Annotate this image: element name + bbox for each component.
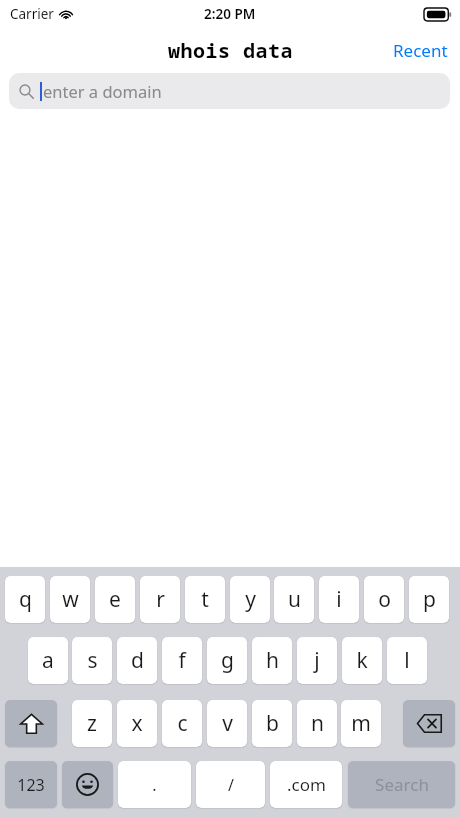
button[interactable]: . <box>118 761 191 808</box>
staticText: a <box>42 646 54 675</box>
button[interactable]: e <box>95 576 135 623</box>
button[interactable]: f <box>162 637 202 684</box>
button[interactable]: y <box>230 576 270 623</box>
staticText: r <box>156 585 165 614</box>
staticText: p <box>423 585 436 614</box>
staticText: d <box>131 646 144 675</box>
button[interactable]: q <box>5 576 45 623</box>
button[interactable]: b <box>252 700 292 747</box>
button[interactable]: l <box>387 637 427 684</box>
button[interactable]: m <box>341 700 381 747</box>
staticText: 2:20 PM <box>204 5 256 23</box>
staticText: e <box>109 585 121 614</box>
staticText: x <box>131 709 143 738</box>
staticText: o <box>378 585 391 614</box>
button[interactable]: t <box>185 576 225 623</box>
staticText: s <box>87 646 98 675</box>
staticText: f <box>178 646 186 675</box>
button[interactable]: v <box>207 700 247 747</box>
button[interactable]: i <box>319 576 359 623</box>
staticText: u <box>288 585 301 614</box>
staticText: .com <box>287 773 326 796</box>
button[interactable]: x <box>117 700 157 747</box>
staticText: w <box>62 585 79 614</box>
button[interactable]: z <box>72 700 112 747</box>
button[interactable]: Recent <box>381 33 460 68</box>
staticText: c <box>177 709 188 738</box>
button[interactable]: Emoji <box>62 761 113 808</box>
staticText: g <box>221 646 234 675</box>
button[interactable]: .com <box>270 761 342 808</box>
button[interactable]: Shift <box>5 700 57 747</box>
button[interactable]: 123 <box>5 761 57 808</box>
button[interactable]: enter a domain <box>9 73 450 109</box>
staticText: t <box>201 585 209 614</box>
staticText: n <box>311 709 324 738</box>
button[interactable]: Search <box>348 761 455 808</box>
staticText: k <box>356 646 368 675</box>
button[interactable]: s <box>72 637 112 684</box>
button[interactable]: a <box>28 637 68 684</box>
button[interactable]: g <box>207 637 247 684</box>
button[interactable]: / <box>196 761 265 808</box>
button[interactable]: n <box>297 700 337 747</box>
staticText: whois data <box>168 37 293 64</box>
staticText: 123 <box>17 774 45 796</box>
staticText: i <box>336 585 342 614</box>
button[interactable]: k <box>342 637 382 684</box>
staticText: h <box>266 646 279 675</box>
staticText: q <box>19 585 32 614</box>
button[interactable]: c <box>162 700 202 747</box>
staticText: z <box>87 709 97 738</box>
button[interactable]: Delete <box>403 700 455 747</box>
button[interactable]: o <box>364 576 404 623</box>
button[interactable]: p <box>409 576 449 623</box>
staticText: / <box>228 774 234 796</box>
staticText: y <box>245 585 256 614</box>
button[interactable]: d <box>117 637 157 684</box>
staticText: Carrier <box>10 5 54 23</box>
staticText: l <box>404 646 410 675</box>
staticText: b <box>266 709 279 738</box>
staticText: Search <box>375 773 429 796</box>
staticText: m <box>351 709 371 738</box>
staticText: . <box>152 774 157 796</box>
button[interactable]: j <box>297 637 337 684</box>
button[interactable]: h <box>252 637 292 684</box>
button[interactable]: u <box>274 576 314 623</box>
staticText: Recent <box>393 39 448 62</box>
button[interactable]: w <box>50 576 90 623</box>
staticText: enter a domain <box>43 80 162 102</box>
button[interactable]: r <box>140 576 180 623</box>
staticText: v <box>222 709 233 738</box>
staticText: j <box>314 646 320 675</box>
